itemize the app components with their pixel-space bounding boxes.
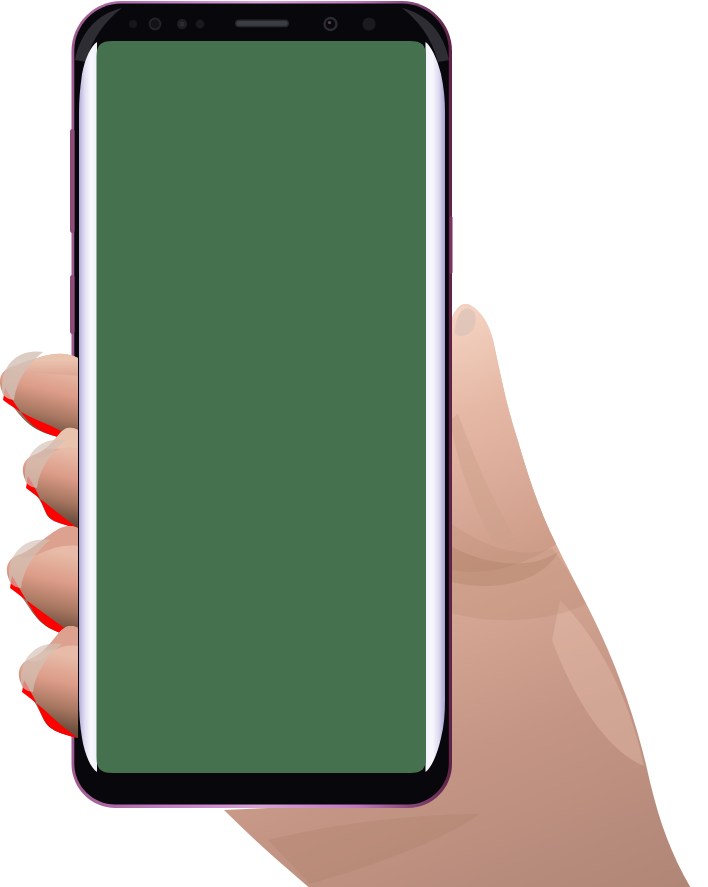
button[interactable]: Smartphone held in hand, blank screen	[0, 0, 708, 887]
